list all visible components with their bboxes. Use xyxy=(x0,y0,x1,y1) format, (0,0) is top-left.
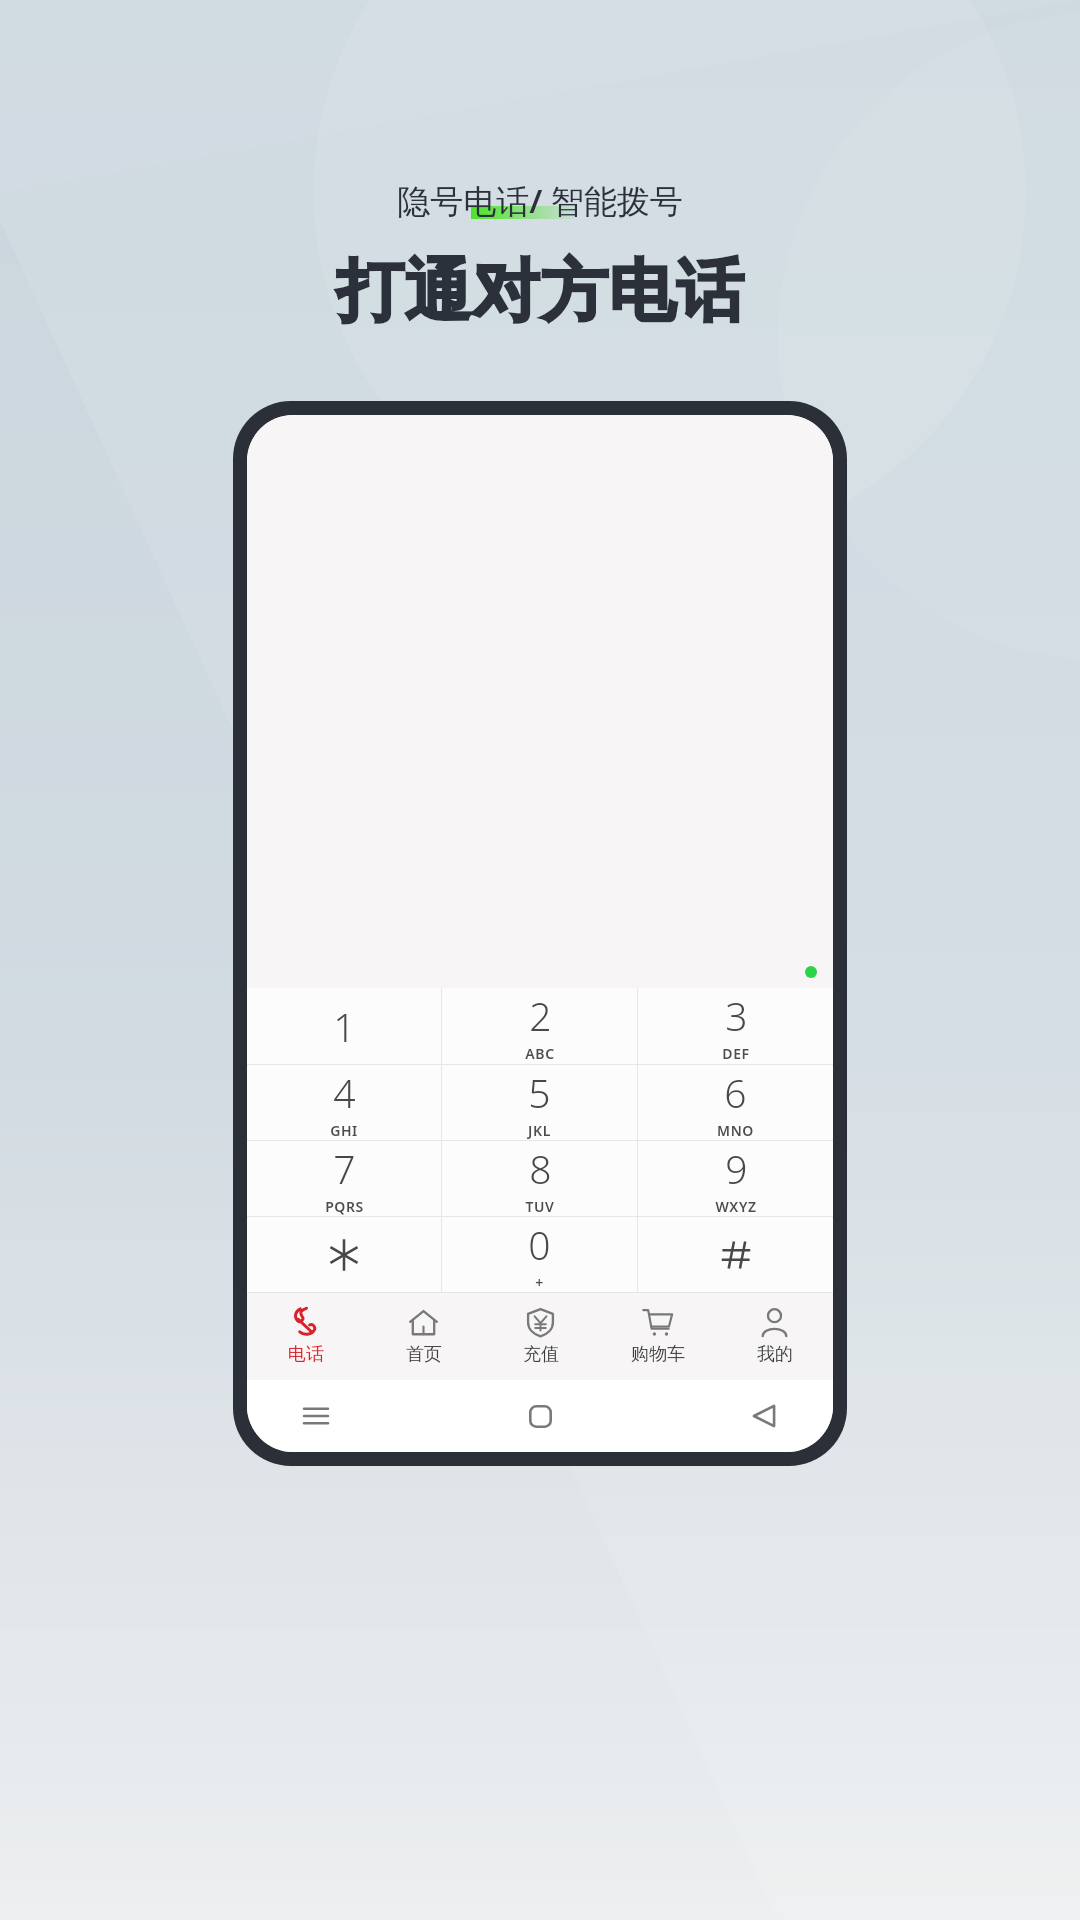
staticText: TUV xyxy=(525,1197,555,1216)
staticText: PQRS xyxy=(325,1197,364,1216)
button[interactable]: 7 xyxy=(247,1141,441,1216)
staticText: 购物车 xyxy=(631,1343,685,1366)
button[interactable]: Recent apps xyxy=(293,1393,339,1439)
staticText: MNO xyxy=(717,1121,754,1140)
button[interactable]: 4 xyxy=(247,1065,441,1140)
staticText: ABC xyxy=(525,1044,555,1063)
button[interactable]: 我的 xyxy=(716,1292,833,1380)
staticText: + xyxy=(535,1273,544,1292)
button[interactable]: 3 xyxy=(638,988,833,1064)
staticText: 6 xyxy=(724,1066,747,1119)
staticText: 首页 xyxy=(406,1343,442,1366)
staticText: 8 xyxy=(529,1142,552,1195)
staticText: JKL xyxy=(528,1121,551,1140)
button[interactable] xyxy=(247,1217,441,1292)
button[interactable]: 8 xyxy=(442,1141,637,1216)
staticText: 0 xyxy=(528,1218,551,1271)
staticText: 4 xyxy=(333,1066,356,1119)
button[interactable]: Home xyxy=(517,1393,563,1439)
staticText: GHI xyxy=(330,1121,358,1140)
staticText: 9 xyxy=(725,1142,748,1195)
button[interactable]: 购物车 xyxy=(599,1292,716,1380)
button[interactable]: 1 xyxy=(247,988,441,1064)
staticText: 充值 xyxy=(523,1343,559,1366)
button[interactable]: 9 xyxy=(638,1141,833,1216)
staticText: 3 xyxy=(725,989,748,1042)
staticText: WXYZ xyxy=(715,1197,757,1216)
button[interactable]: Back xyxy=(741,1393,787,1439)
staticText: 7 xyxy=(333,1142,356,1195)
staticText: 电话 xyxy=(288,1343,324,1366)
staticText: 1 xyxy=(333,1000,356,1053)
staticText: DEF xyxy=(722,1044,750,1063)
button[interactable]: 6 xyxy=(638,1065,833,1140)
staticText: 打通对方电话 xyxy=(336,249,744,333)
staticText: 隐号电话/ 智能拨号 xyxy=(397,178,683,223)
staticText: 2 xyxy=(529,989,552,1042)
button[interactable]: 首页 xyxy=(365,1292,482,1380)
staticText: 我的 xyxy=(757,1343,793,1366)
button[interactable]: 2 xyxy=(442,988,637,1064)
button[interactable]: 0 xyxy=(442,1217,637,1292)
staticText: 5 xyxy=(528,1066,551,1119)
button[interactable]: 电话 xyxy=(247,1292,365,1380)
button[interactable] xyxy=(638,1217,833,1292)
button[interactable]: 5 xyxy=(442,1065,637,1140)
button[interactable]: 充值 xyxy=(482,1292,599,1380)
